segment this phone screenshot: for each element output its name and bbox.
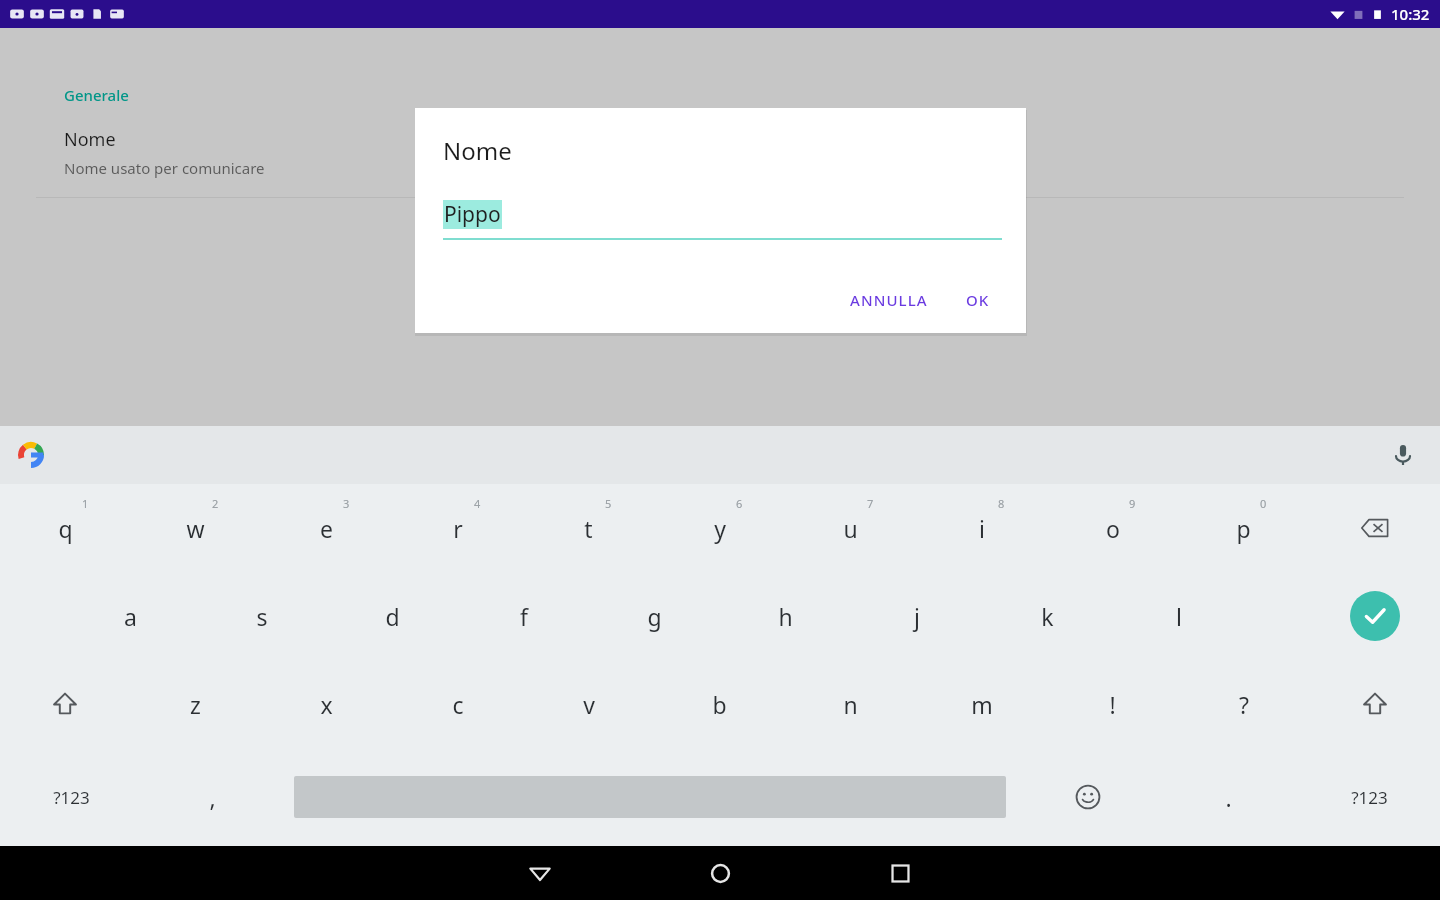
button[interactable]: Emoji bbox=[1017, 748, 1158, 846]
button[interactable]: s bbox=[196, 572, 327, 660]
button[interactable]: Enter bbox=[1309, 572, 1440, 660]
staticText: Generale bbox=[64, 85, 129, 105]
button[interactable]: p bbox=[1178, 484, 1309, 572]
button[interactable]: k bbox=[982, 572, 1113, 660]
staticText: q bbox=[58, 513, 73, 544]
staticText: Nome bbox=[64, 127, 116, 152]
staticText: 5 bbox=[605, 496, 612, 511]
staticText: 1 bbox=[82, 496, 89, 511]
button[interactable]: q bbox=[0, 484, 130, 572]
button[interactable]: l bbox=[1113, 572, 1244, 660]
staticText: , bbox=[209, 782, 216, 813]
staticText: ?123 bbox=[1351, 786, 1388, 809]
button[interactable]: ANNULLA bbox=[838, 281, 940, 319]
button[interactable]: Shift bbox=[0, 660, 130, 748]
staticText: g bbox=[647, 601, 662, 632]
button[interactable]: i bbox=[916, 484, 1047, 572]
staticText: 8 bbox=[998, 496, 1005, 511]
staticText: w bbox=[186, 513, 205, 544]
button[interactable]: Backspace bbox=[1309, 484, 1440, 572]
button[interactable]: f bbox=[458, 572, 589, 660]
button[interactable]: ?123 bbox=[0, 748, 142, 846]
button[interactable]: . bbox=[1158, 748, 1299, 846]
staticText: s bbox=[256, 601, 268, 632]
staticText: ! bbox=[1109, 689, 1116, 720]
staticText: a bbox=[124, 601, 137, 632]
staticText: Nome usato per comunicare bbox=[64, 158, 265, 178]
staticText: t bbox=[584, 513, 593, 544]
button[interactable]: , bbox=[142, 748, 283, 846]
button[interactable]: ? bbox=[1178, 660, 1309, 748]
button[interactable]: x bbox=[261, 660, 392, 748]
staticText: z bbox=[190, 689, 201, 720]
button[interactable]: OK bbox=[954, 281, 1002, 319]
button[interactable]: a bbox=[65, 572, 196, 660]
staticText: 0 bbox=[1260, 496, 1267, 511]
button[interactable]: c bbox=[392, 660, 523, 748]
button[interactable]: v bbox=[523, 660, 654, 748]
button[interactable]: z bbox=[130, 660, 261, 748]
staticText: l bbox=[1176, 601, 1182, 632]
button[interactable]: j bbox=[851, 572, 982, 660]
button[interactable]: h bbox=[720, 572, 851, 660]
button[interactable]: Google bbox=[14, 438, 48, 472]
button[interactable]: m bbox=[916, 660, 1047, 748]
staticText: j bbox=[914, 601, 920, 632]
button[interactable]: w bbox=[130, 484, 261, 572]
staticText: OK bbox=[966, 290, 990, 310]
staticText: 4 bbox=[474, 496, 481, 511]
staticText: n bbox=[843, 689, 858, 720]
staticText: 10:32 bbox=[1391, 4, 1430, 24]
staticText: p bbox=[1236, 513, 1251, 544]
staticText: o bbox=[1106, 513, 1120, 544]
staticText: b bbox=[712, 689, 727, 720]
button[interactable]: Voice input bbox=[1384, 436, 1422, 474]
button[interactable]: u bbox=[785, 484, 916, 572]
staticText: r bbox=[453, 513, 463, 544]
staticText: ? bbox=[1239, 689, 1249, 720]
button[interactable]: Space bbox=[283, 748, 1017, 846]
staticText: 2 bbox=[212, 496, 219, 511]
button[interactable]: Back bbox=[502, 846, 578, 900]
button[interactable]: Shift bbox=[1309, 660, 1440, 748]
button[interactable]: e bbox=[261, 484, 392, 572]
staticText: k bbox=[1041, 601, 1054, 632]
button[interactable]: t bbox=[523, 484, 654, 572]
button[interactable]: y bbox=[654, 484, 785, 572]
staticText: ?123 bbox=[53, 786, 90, 809]
staticText: 9 bbox=[1129, 496, 1136, 511]
button[interactable]: n bbox=[785, 660, 916, 748]
button[interactable]: Home bbox=[682, 846, 758, 900]
staticText: e bbox=[320, 513, 333, 544]
staticText: ANNULLA bbox=[850, 290, 928, 310]
button[interactable]: d bbox=[327, 572, 458, 660]
button[interactable]: b bbox=[654, 660, 785, 748]
staticText: 3 bbox=[343, 496, 350, 511]
button[interactable]: o bbox=[1047, 484, 1178, 572]
button[interactable]: Recent apps bbox=[862, 846, 938, 900]
staticText: 6 bbox=[736, 496, 743, 511]
staticText: c bbox=[452, 689, 464, 720]
button[interactable]: g bbox=[589, 572, 720, 660]
staticText: y bbox=[714, 513, 726, 544]
button[interactable]: Pippo bbox=[443, 200, 1002, 240]
staticText: x bbox=[320, 689, 333, 720]
staticText: Nome bbox=[443, 134, 512, 167]
staticText: v bbox=[583, 689, 595, 720]
staticText: d bbox=[385, 601, 400, 632]
button[interactable]: ! bbox=[1047, 660, 1178, 748]
staticText: h bbox=[778, 601, 793, 632]
staticText: f bbox=[520, 601, 528, 632]
staticText: m bbox=[971, 689, 993, 720]
staticText: i bbox=[979, 513, 985, 544]
staticText: u bbox=[843, 513, 858, 544]
staticText: . bbox=[1225, 782, 1232, 813]
button[interactable]: Nome bbox=[0, 127, 1440, 188]
staticText: 7 bbox=[867, 496, 874, 511]
button[interactable]: r bbox=[392, 484, 523, 572]
staticText: Pippo bbox=[444, 200, 501, 229]
button[interactable]: ?123 bbox=[1299, 748, 1440, 846]
